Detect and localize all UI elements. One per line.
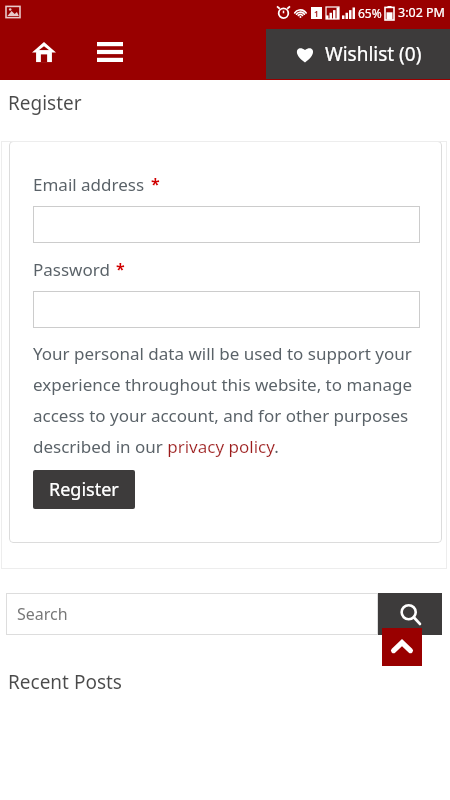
button[interactable]: Home	[22, 30, 66, 74]
staticText: *	[116, 258, 125, 280]
staticText: 1	[314, 8, 319, 19]
staticText: Recent Posts	[8, 669, 122, 695]
button[interactable]: Menu	[88, 30, 132, 74]
staticText: Search	[17, 603, 68, 625]
staticText: Register	[49, 477, 119, 502]
staticText: Password	[33, 258, 110, 281]
button[interactable]: Scroll to top	[382, 628, 422, 666]
button[interactable]: Wishlist (0)	[266, 29, 450, 79]
button[interactable]: Search	[378, 593, 442, 635]
button[interactable]	[33, 291, 420, 328]
staticText: 3:02 PM	[398, 4, 445, 21]
staticText: 65%	[358, 5, 382, 21]
button[interactable]: Search	[6, 593, 378, 635]
button[interactable]	[33, 206, 420, 243]
staticText: Email address	[33, 173, 145, 196]
staticText: Your personal data will be used to suppo…	[33, 342, 420, 458]
staticText: Wishlist (0)	[325, 41, 422, 67]
button[interactable]: Register	[33, 470, 135, 509]
staticText: *	[151, 173, 160, 195]
staticText: Register	[8, 90, 82, 116]
